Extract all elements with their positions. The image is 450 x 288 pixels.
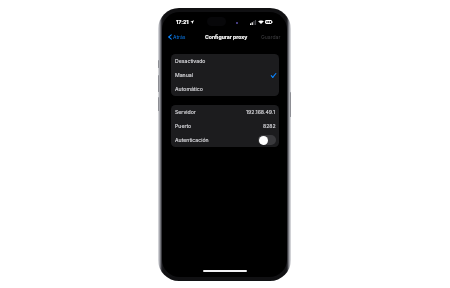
staticText: Desactivado [175,58,206,64]
staticText: 8282 [263,123,276,129]
staticText: Automático [175,86,203,92]
staticText: Atrás [173,34,186,40]
staticText: Configurar proxy [205,34,248,40]
button[interactable]: Guardar [261,34,281,40]
staticText: Servidor [175,109,196,115]
button[interactable]: Manual [171,68,279,82]
button[interactable]: Servidor [171,105,279,119]
button[interactable]: Atrás [168,34,186,40]
button[interactable]: Puerto [171,119,279,133]
staticText: Autenticación [175,137,209,143]
staticText: Puerto [175,123,192,129]
staticText: 192.168.49.1 [246,109,276,115]
staticText: Manual [175,72,193,78]
button[interactable]: Desactivado [171,54,279,68]
button[interactable]: Automático [171,82,279,96]
button[interactable]: Autenticación toggle [258,135,276,145]
staticText: 17:21 [176,19,189,25]
